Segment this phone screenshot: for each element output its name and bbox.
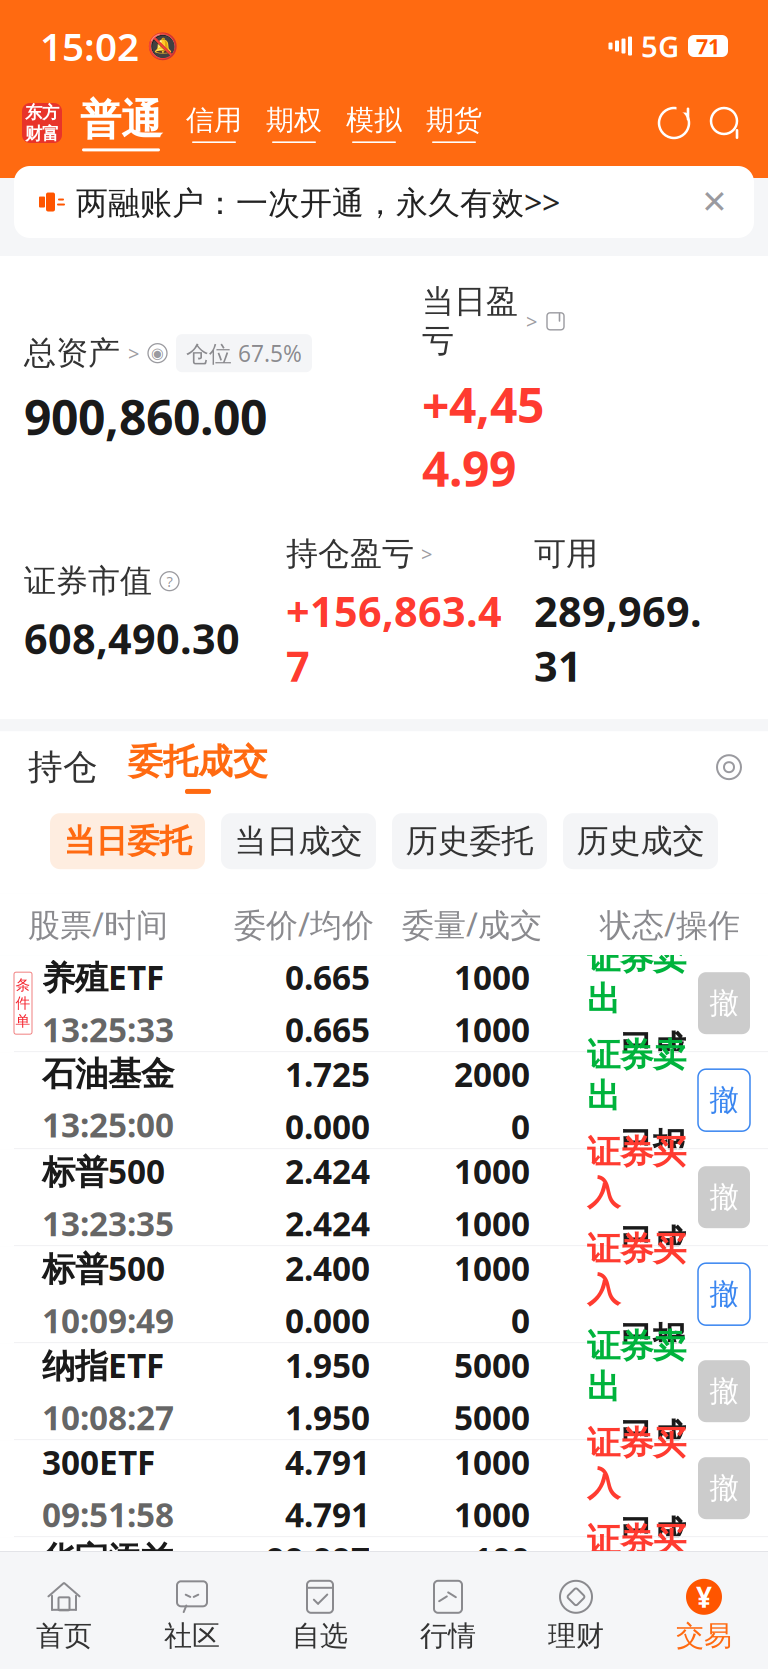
button[interactable]: 历史成交	[563, 813, 718, 869]
button[interactable]: 期权	[242, 103, 322, 143]
staticText: 100	[473, 1537, 530, 1581]
button[interactable]: 历史委托	[392, 813, 547, 869]
staticText: ◉	[151, 345, 164, 361]
button[interactable]: 信用	[162, 103, 242, 143]
button[interactable]: 行情	[384, 1575, 512, 1657]
staticText: 财	[25, 123, 42, 144]
staticText: 2000	[454, 1052, 530, 1096]
staticText: 股票/时间	[28, 903, 168, 945]
button[interactable]: 撤单	[698, 1069, 750, 1131]
staticText: 1000	[454, 1201, 530, 1245]
button[interactable]: 标普500	[0, 1246, 768, 1343]
staticText: 1000	[454, 955, 530, 999]
staticText: 0.665	[285, 1007, 370, 1051]
staticText: 委托成交	[128, 740, 268, 783]
staticText: 当日成交	[234, 821, 362, 861]
button[interactable]: 撤单	[698, 1360, 750, 1422]
button[interactable]: 条	[0, 955, 768, 1052]
staticText: 0	[511, 1104, 530, 1148]
button[interactable]: 撤单	[698, 1457, 750, 1519]
button[interactable]: 持仓盈亏	[286, 534, 534, 693]
button[interactable]: ¥	[640, 1575, 768, 1657]
staticText: 委价/均价	[234, 903, 374, 945]
button[interactable]: 理财	[512, 1575, 640, 1657]
staticText: 撤	[709, 1276, 738, 1312]
staticText: 已成	[620, 1610, 686, 1650]
button[interactable]: 撤单	[698, 1263, 750, 1325]
button[interactable]: 持仓	[24, 746, 102, 788]
button[interactable]: 撤单	[698, 1554, 750, 1616]
button[interactable]: 证券市值	[24, 561, 286, 666]
button[interactable]: 自选	[256, 1575, 384, 1657]
staticText: 🔕	[147, 31, 179, 60]
staticText: ✕	[701, 184, 728, 220]
staticText: 撤	[709, 1470, 738, 1506]
staticText: 持仓	[28, 746, 98, 788]
staticText: 证券卖出	[587, 938, 686, 1020]
staticText: 已报	[620, 1319, 686, 1359]
staticText: 99.997	[266, 1589, 370, 1633]
staticText: 撤	[709, 1179, 738, 1215]
button[interactable]: 撤单	[698, 1166, 750, 1228]
staticText: 证券卖出	[587, 1326, 686, 1408]
staticText: 已成	[620, 1416, 686, 1456]
button[interactable]: 期货	[402, 103, 482, 143]
button[interactable]: 300ETF	[0, 1440, 768, 1537]
staticText: 期权	[266, 103, 322, 137]
staticText: 4.791	[285, 1440, 370, 1484]
staticText: 5000	[454, 1343, 530, 1387]
staticText: 10:08:27	[42, 1395, 174, 1439]
button[interactable]: 可用	[534, 534, 734, 693]
button[interactable]: 首页	[0, 1575, 128, 1657]
staticText: 石油基金	[42, 1054, 174, 1094]
button[interactable]: 华宝添益	[0, 1537, 768, 1634]
button[interactable]: 标普500	[0, 1149, 768, 1246]
staticText: 100	[473, 1589, 530, 1633]
staticText: 0.000	[285, 1298, 370, 1342]
staticText: 0.665	[285, 955, 370, 999]
staticText: 2.424	[285, 1149, 370, 1193]
button[interactable]: 模拟	[322, 103, 402, 143]
staticText: 已成	[620, 1513, 686, 1553]
staticText: 纳指ETF	[42, 1343, 164, 1387]
button[interactable]: 纳指ETF	[0, 1343, 768, 1440]
button[interactable]: 普通	[62, 95, 162, 151]
staticText: 撤	[709, 1373, 738, 1409]
staticText: 证券买入	[587, 1229, 686, 1311]
staticText: ¥	[696, 1578, 712, 1615]
staticText: 信用	[186, 103, 242, 137]
staticText: 标普500	[42, 1149, 165, 1193]
button[interactable]: 设置	[714, 752, 744, 782]
staticText: +4,454.99	[422, 373, 544, 500]
button[interactable]: 委托成交	[102, 740, 268, 794]
staticText: 自选	[292, 1619, 348, 1653]
button[interactable]: 当日委托	[50, 813, 205, 869]
button[interactable]: 撤单	[698, 972, 750, 1034]
staticText: >	[526, 308, 537, 335]
staticText: 持仓盈亏	[286, 534, 414, 573]
staticText: 5G	[641, 26, 679, 65]
staticText: 首页	[36, 1619, 92, 1653]
staticText: 模拟	[346, 103, 402, 137]
staticText: 09:51:58	[42, 1492, 174, 1536]
staticText: 理财	[548, 1619, 604, 1653]
button[interactable]: 石油基金	[0, 1052, 768, 1149]
staticText: 2.400	[285, 1246, 370, 1290]
staticText: 1000	[454, 1492, 530, 1536]
button[interactable]: 当日成交	[221, 813, 376, 869]
staticText: 13:25:33	[42, 1007, 174, 1051]
staticText: 300ETF	[42, 1440, 155, 1484]
button[interactable]: 搜索	[708, 105, 744, 141]
staticText: 4.791	[285, 1492, 370, 1536]
button[interactable]: 刷新	[656, 105, 692, 141]
staticText: 单	[15, 1012, 30, 1030]
staticText: 已成	[620, 1222, 686, 1262]
staticText: 0	[511, 1298, 530, 1342]
staticText: 期货	[426, 103, 482, 137]
staticText: >	[128, 340, 139, 366]
staticText: 条	[15, 976, 30, 994]
staticText: 证券市值	[24, 561, 152, 601]
button[interactable]: 两融账户：一次开通，永久有效>>	[14, 166, 754, 238]
button[interactable]: 社区	[128, 1575, 256, 1657]
staticText: 历史委托	[405, 821, 533, 861]
